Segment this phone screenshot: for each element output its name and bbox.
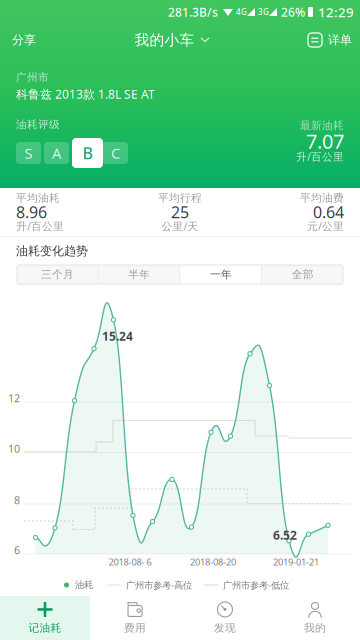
staticText: 油耗 (75, 579, 93, 591)
button[interactable]: 全部 (262, 265, 343, 284)
button[interactable]: 详单 (298, 24, 360, 56)
button[interactable]: 我的小车 (134, 24, 209, 56)
staticText: 全部 (292, 268, 314, 281)
staticText: 公里/天 (161, 219, 198, 233)
staticText: 我的小车 (134, 31, 194, 49)
staticText: 平均油耗 (16, 191, 60, 204)
button[interactable]: C (103, 142, 128, 164)
staticText: 元/公里 (307, 219, 344, 233)
staticText: 8 (14, 493, 20, 507)
staticText: 最新油耗 (300, 119, 344, 132)
staticText: B (82, 142, 92, 164)
staticText: 6 (14, 543, 20, 557)
staticText: 广州市参考-高位 (126, 579, 192, 591)
staticText: 26% (281, 4, 305, 20)
staticText: 平均油费 (300, 191, 344, 204)
staticText: 15.24 (102, 328, 133, 344)
staticText: 半年 (128, 268, 150, 281)
staticText: A (52, 143, 61, 163)
staticText: 广州市参考-低位 (223, 579, 289, 591)
button[interactable]: 发现 (180, 596, 270, 640)
button[interactable]: S (16, 142, 41, 164)
staticText: 3G (258, 7, 269, 17)
staticText: 2018-08- 6 (108, 556, 151, 568)
button[interactable]: B (72, 138, 103, 168)
staticText: 油耗评级 (16, 118, 60, 131)
staticText: 费用 (124, 621, 146, 634)
button[interactable]: 我的 (270, 596, 360, 640)
staticText: 详单 (328, 33, 352, 47)
button[interactable]: A (44, 142, 69, 164)
staticText: 12 (8, 391, 20, 405)
staticText: 6.52 (273, 527, 297, 543)
staticText: 8.96 (16, 201, 47, 223)
staticText: 12:29 (318, 3, 354, 21)
staticText: 7.07 (306, 128, 344, 154)
button[interactable]: 半年 (99, 265, 180, 284)
button[interactable]: 一年 (180, 265, 261, 284)
button[interactable]: 记油耗 (0, 596, 90, 640)
staticText: C (111, 143, 120, 163)
staticText: 升/百公里 (296, 149, 344, 164)
staticText: 科鲁兹 2013款 1.8L SE AT (16, 86, 155, 102)
staticText: 发现 (214, 621, 236, 634)
button[interactable]: 分享 (0, 24, 46, 56)
staticText: 2018-08-20 (190, 556, 236, 568)
staticText: 三个月 (41, 268, 74, 281)
staticText: 0.64 (313, 201, 344, 223)
staticText: 平均行程 (158, 191, 202, 204)
button[interactable]: 费用 (90, 596, 180, 640)
button[interactable]: 三个月 (17, 265, 98, 284)
staticText: 广州市 (16, 71, 49, 84)
staticText: 4G (236, 7, 247, 17)
staticText: 升/百公里 (16, 219, 64, 233)
staticText: 油耗变化趋势 (16, 244, 88, 258)
staticText: S (24, 143, 32, 163)
staticText: 281.3B/s (168, 4, 218, 20)
staticText: 2019-01-21 (273, 556, 319, 568)
staticText: 分享 (12, 33, 36, 47)
staticText: 记油耗 (28, 621, 61, 634)
staticText: 我的 (304, 621, 326, 634)
staticText: 一年 (210, 268, 232, 281)
staticText: 25 (171, 201, 189, 223)
staticText: 10 (8, 441, 20, 456)
